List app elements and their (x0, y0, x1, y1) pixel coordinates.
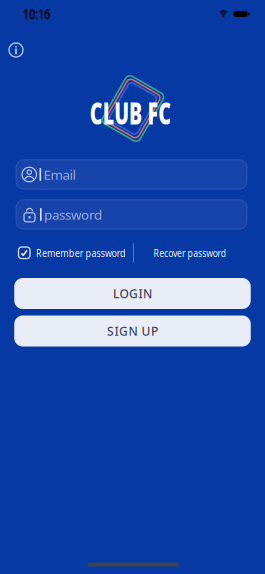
staticText: Remember password (36, 246, 143, 260)
button[interactable]: Recover password (139, 240, 241, 266)
staticText: LOGIN (113, 285, 152, 301)
button[interactable]: LOGIN (14, 278, 251, 309)
staticText: password (44, 206, 102, 223)
button[interactable]: SIGN UP (14, 315, 251, 346)
button[interactable]: Info (4, 38, 28, 62)
staticText: 10:16 (18, 4, 54, 23)
staticText: CLUB FC (67, 92, 194, 133)
button[interactable]: Remember password (18, 243, 173, 263)
staticText: Email (44, 166, 76, 183)
staticText: Recover password (145, 246, 235, 260)
staticText: SIGN UP (107, 323, 158, 339)
